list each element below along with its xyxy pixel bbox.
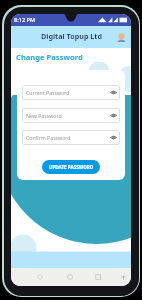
staticText: Digital Topup Ltd: [41, 31, 102, 41]
button[interactable]: Recent apps: [93, 272, 103, 282]
other: Show password: [110, 112, 117, 119]
staticText: 8:12 PM: [14, 16, 36, 24]
button[interactable]: Home: [65, 272, 75, 282]
staticText: UPDATE PASSWORD: [49, 164, 94, 170]
button[interactable]: Back: [35, 272, 45, 282]
staticText: Change Password: [16, 52, 83, 62]
button[interactable]: UPDATE PASSWORD: [42, 160, 100, 174]
staticText: Confirm Password: [26, 134, 71, 141]
staticText: New Password: [26, 112, 62, 119]
other: Show password: [110, 89, 117, 96]
button[interactable]: Current Password: [22, 85, 120, 100]
other: Show password: [110, 134, 117, 141]
staticText: Current Password: [26, 89, 70, 96]
button[interactable]: Confirm Password: [22, 130, 120, 145]
button[interactable]: Keyboard: [119, 273, 128, 282]
button[interactable]: New Password: [22, 108, 120, 123]
button[interactable]: Profile: [117, 33, 126, 42]
